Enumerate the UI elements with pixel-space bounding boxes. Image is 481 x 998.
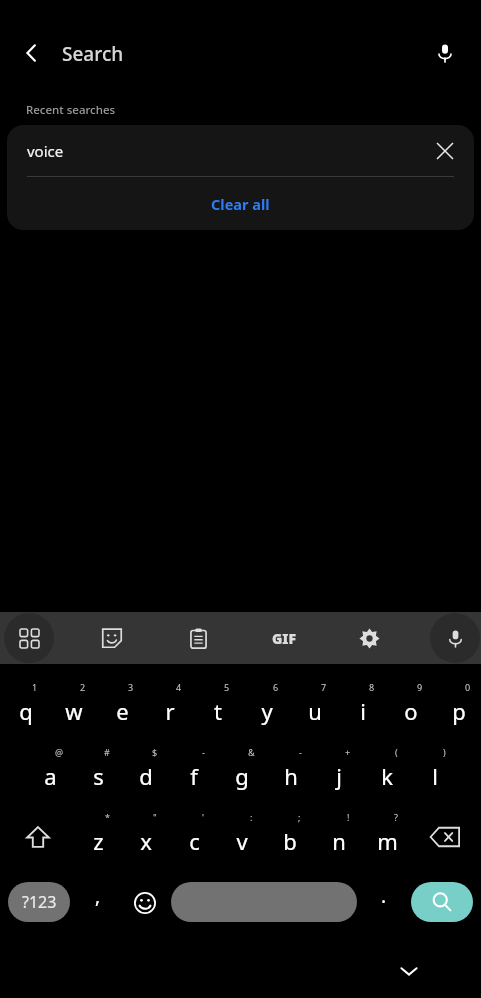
staticText: ( [395,746,398,758]
button[interactable]: ' [170,804,218,869]
staticText: g [235,761,249,791]
button[interactable]: Hide keyboard [389,951,429,991]
staticText: , [95,883,101,909]
button[interactable]: 0 [435,674,481,739]
staticText: ) [443,746,446,758]
staticText: 3 [128,681,134,693]
button[interactable]: Keyboard modes [4,613,54,663]
button[interactable]: 4 [146,674,194,739]
button[interactable]: 8 [339,674,387,739]
staticText: d [139,761,153,791]
staticText: e [116,696,129,726]
staticText: s [93,761,104,791]
button[interactable]: Remove voice [428,134,462,168]
button[interactable]: & [218,739,266,804]
button[interactable]: 3 [98,674,146,739]
button[interactable]: ?123 [8,882,70,922]
button[interactable]: 1 [2,674,50,739]
staticText: u [308,696,322,726]
staticText: w [65,696,83,726]
staticText: 9 [417,681,423,693]
staticText: " [153,811,157,823]
staticText: : [250,811,253,823]
staticText: 7 [321,681,327,693]
button[interactable]: : [218,804,266,869]
button[interactable]: 6 [243,674,291,739]
staticText: 5 [224,681,230,693]
button[interactable]: Search [411,882,473,922]
staticText: * [105,811,110,823]
button[interactable]: - [267,739,315,804]
button[interactable]: Space [171,882,357,922]
staticText: n [332,826,346,856]
button[interactable]: ) [411,739,459,804]
button[interactable]: " [122,804,170,869]
button[interactable]: # [74,739,122,804]
staticText: Search [62,41,124,67]
staticText: ' [202,811,205,823]
button[interactable]: GIF [259,613,309,663]
button[interactable]: Back [12,33,52,73]
staticText: r [165,696,175,726]
staticText: l [432,761,438,791]
staticText: 8 [369,681,375,693]
button[interactable]: 5 [194,674,242,739]
staticText: voice [27,141,64,161]
staticText: ? [394,811,398,823]
button[interactable]: ? [363,804,411,869]
staticText: o [404,696,418,726]
button[interactable]: @ [26,739,74,804]
staticText: - [299,746,302,758]
button[interactable]: Clipboard [173,613,223,663]
button[interactable]: - [170,739,218,804]
button[interactable]: 7 [291,674,339,739]
staticText: Clear all [211,194,270,214]
staticText: 0 [465,681,471,693]
staticText: - [202,746,205,758]
staticText: v [236,826,248,856]
button[interactable]: $ [122,739,170,804]
button[interactable]: voice [7,125,474,176]
staticText: c [189,826,200,856]
staticText: x [140,826,152,856]
button[interactable]: ( [363,739,411,804]
button[interactable]: Voice search [425,33,465,73]
staticText: j [336,761,342,791]
button[interactable]: Settings [344,613,394,663]
button[interactable]: ; [266,804,314,869]
staticText: 2 [80,681,86,693]
button[interactable]: ! [315,804,363,869]
staticText: @ [55,746,64,758]
button[interactable]: Clear all [7,177,474,230]
staticText: & [248,746,255,758]
button[interactable]: * [74,804,122,869]
staticText: ! [347,811,350,823]
staticText: t [214,696,222,726]
staticText: i [360,696,366,726]
staticText: b [283,826,297,856]
button[interactable]: . [364,878,404,926]
button[interactable]: 9 [387,674,435,739]
staticText: # [104,746,110,758]
staticText: Recent searches [26,102,116,118]
button[interactable]: 2 [50,674,98,739]
staticText: q [19,696,33,726]
staticText: h [284,761,298,791]
staticText: ?123 [22,891,57,913]
staticText: . [381,883,387,909]
button[interactable]: Shift [2,804,74,869]
staticText: p [452,696,466,726]
button[interactable]: + [315,739,363,804]
staticText: + [345,746,351,758]
staticText: a [44,761,57,791]
button[interactable]: , [76,878,120,926]
button[interactable]: Stickers [87,613,137,663]
staticText: GIF [272,629,297,648]
staticText: m [377,826,398,856]
button[interactable]: Backspace [411,804,479,869]
button[interactable]: Emoji [123,880,167,926]
staticText: ; [298,811,301,823]
staticText: y [261,696,273,726]
staticText: k [381,761,393,791]
button[interactable]: Voice input [430,613,480,663]
